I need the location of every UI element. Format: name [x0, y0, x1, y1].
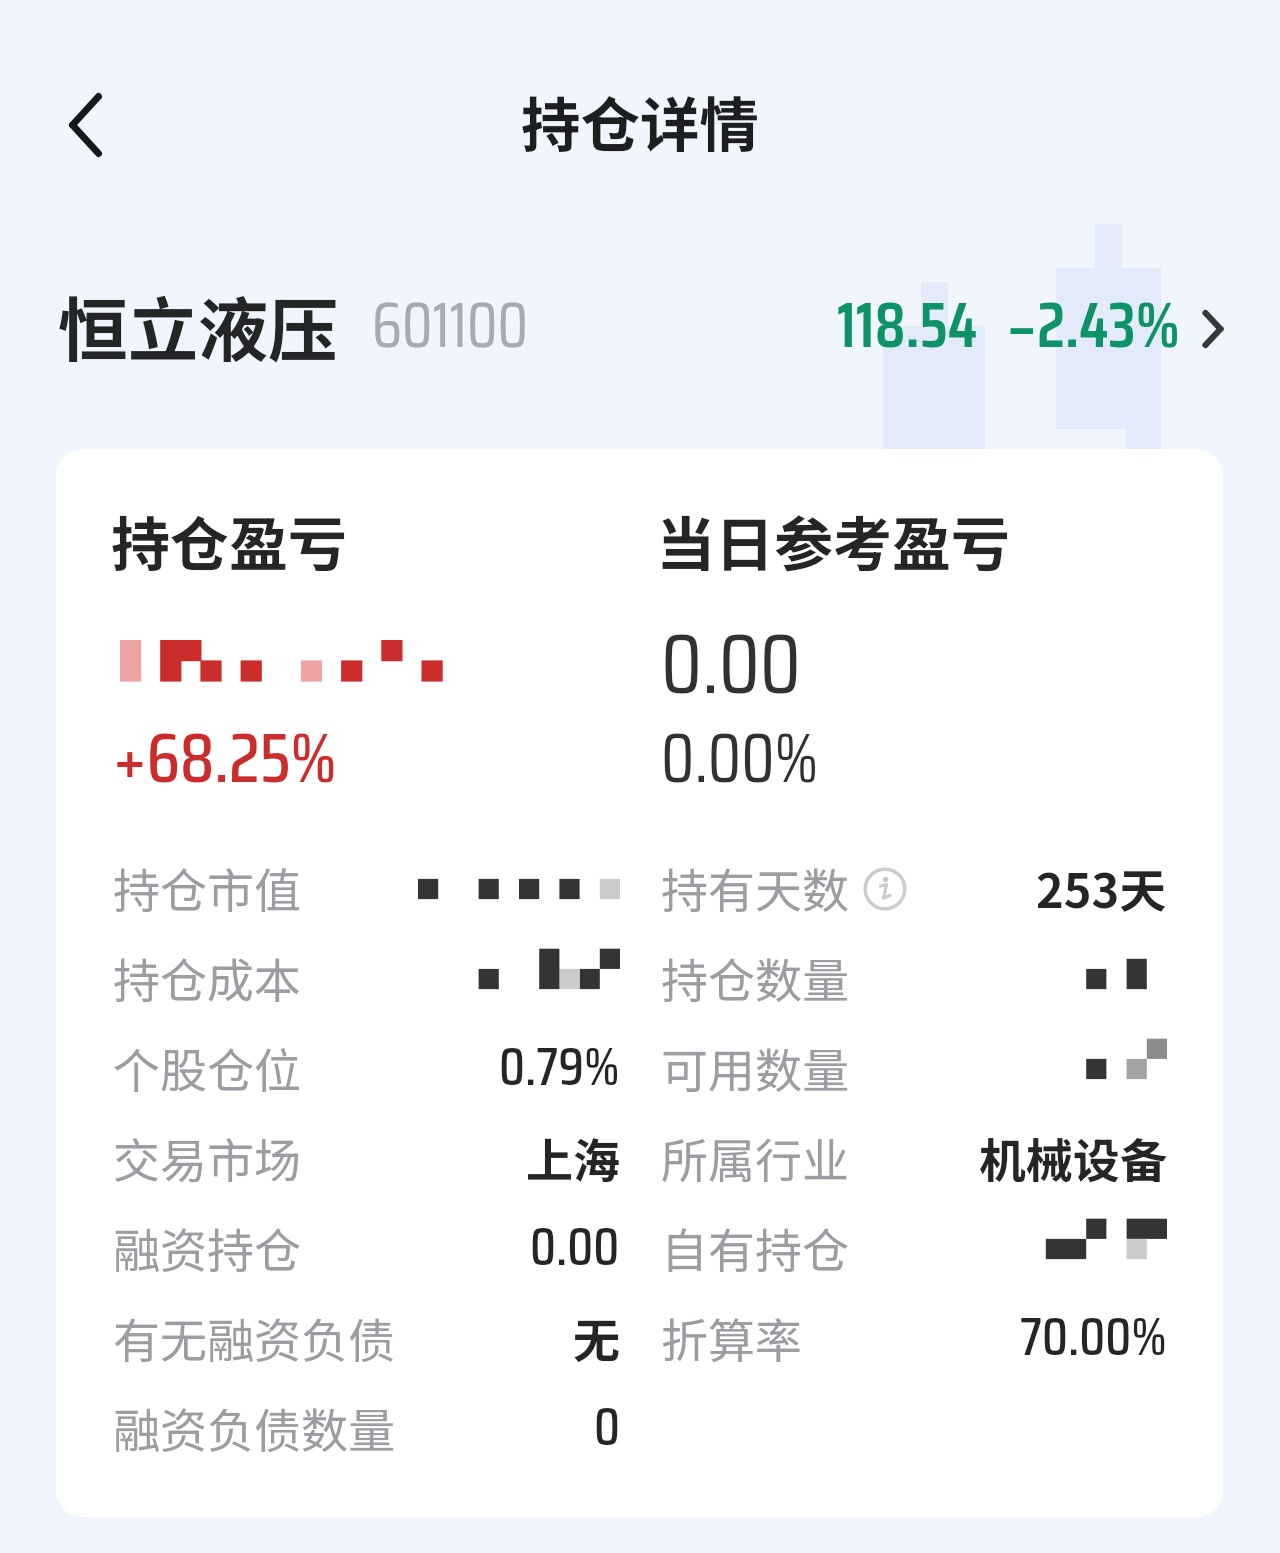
- staticText: 机械设备: [979, 1129, 1167, 1190]
- staticText: +68.25%: [113, 716, 337, 807]
- staticText: 交易市场: [113, 1129, 301, 1190]
- staticText: 持仓详情: [521, 85, 759, 162]
- staticText: 118.54: [837, 288, 978, 370]
- staticText: 70.00%: [1020, 1304, 1167, 1374]
- staticText: 个股仓位: [113, 1039, 301, 1100]
- staticText: 当日参考盈亏: [656, 505, 1011, 582]
- button[interactable]: Back: [38, 80, 114, 156]
- staticText: 折算率: [661, 1309, 802, 1370]
- staticText: 持仓数量: [661, 949, 849, 1010]
- staticText: 持仓成本: [113, 949, 301, 1010]
- staticText: 所属行业: [661, 1129, 849, 1190]
- staticText: 253天: [1036, 859, 1167, 920]
- staticText: 持仓市值: [113, 859, 301, 920]
- staticText: 有无融资负债: [113, 1309, 395, 1370]
- staticText: −2.43%: [1007, 288, 1180, 370]
- staticText: 0.00%: [661, 717, 819, 807]
- staticText: 恒立液压: [58, 283, 338, 374]
- staticText: 601100: [372, 288, 528, 370]
- staticText: 0.79%: [499, 1034, 620, 1104]
- staticText: 0: [594, 1394, 620, 1464]
- staticText: 0.00: [530, 1214, 620, 1284]
- staticText: 自有持仓: [661, 1219, 849, 1280]
- staticText: 0.00: [661, 613, 801, 723]
- staticText: 融资负债数量: [113, 1399, 395, 1460]
- staticText: 持有天数: [661, 859, 849, 920]
- staticText: 无: [573, 1309, 620, 1370]
- staticText: 上海: [526, 1129, 620, 1190]
- staticText: 融资持仓: [113, 1219, 301, 1280]
- staticText: 可用数量: [661, 1039, 849, 1100]
- staticText: 持仓盈亏: [111, 505, 348, 582]
- button[interactable]: 恒立液压: [0, 283, 1280, 374]
